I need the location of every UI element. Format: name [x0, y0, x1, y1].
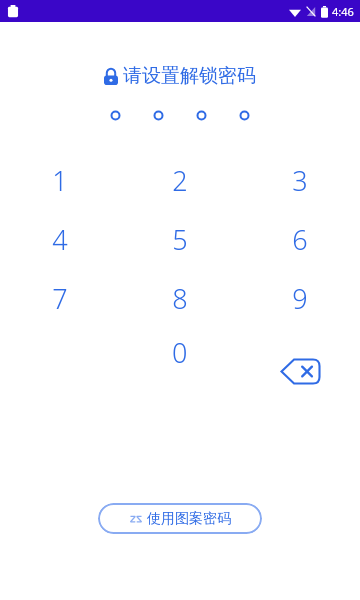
button[interactable]: 0	[120, 328, 240, 414]
staticText: 2	[172, 162, 188, 199]
staticText: 3	[292, 162, 308, 199]
staticText: 7	[52, 280, 68, 317]
staticText: 6	[292, 221, 308, 258]
staticText: 请设置解锁密码	[123, 64, 256, 88]
staticText: 0	[172, 334, 188, 371]
button[interactable]: 5	[120, 210, 240, 269]
staticText: 5	[172, 221, 188, 258]
button[interactable]: 4	[0, 210, 120, 269]
button[interactable]: 9	[240, 269, 360, 328]
button[interactable]: 3	[240, 151, 360, 210]
staticText: 使用图案密码	[147, 510, 231, 528]
button[interactable]: Delete	[240, 328, 360, 414]
button[interactable]: 使用图案密码	[98, 503, 262, 534]
staticText: 4:46	[332, 4, 354, 19]
button[interactable]: 6	[240, 210, 360, 269]
button[interactable]: 2	[120, 151, 240, 210]
staticText: 1	[52, 162, 68, 199]
staticText: 4	[52, 221, 68, 258]
button[interactable]: 1	[0, 151, 120, 210]
button[interactable]: 8	[120, 269, 240, 328]
staticText: 9	[292, 280, 308, 317]
staticText: 8	[172, 280, 188, 317]
button[interactable]: 7	[0, 269, 120, 328]
